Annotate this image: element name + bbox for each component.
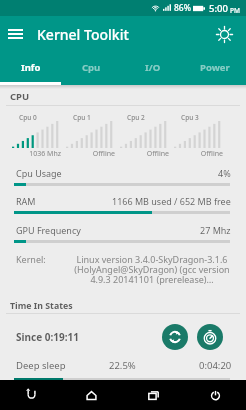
staticText: Cpu Usage <box>16 167 62 179</box>
button[interactable]: Power <box>184 52 246 82</box>
staticText: PM <box>230 6 240 15</box>
staticText: Time In States <box>10 300 73 312</box>
button[interactable]: Power <box>184 380 246 410</box>
staticText: Since 0:19:11 <box>16 330 79 344</box>
staticText: Deep sleep <box>16 359 66 372</box>
button[interactable]: Refresh <box>162 324 188 350</box>
staticText: Kernel Toolkit <box>37 25 129 44</box>
staticText: Cpu 3 <box>181 113 199 122</box>
staticText: Cpu <box>82 61 101 74</box>
staticText: Cpu 2 <box>127 113 145 122</box>
staticText: Linux version 3.4.0-SkyDragon-3.1.6 (Hol… <box>72 253 232 286</box>
staticText: Offline <box>120 149 169 159</box>
staticText: Offline <box>66 149 115 159</box>
staticText: 86% <box>174 2 191 14</box>
staticText: CPU <box>10 90 30 103</box>
staticText: Cpu 1 <box>73 113 91 122</box>
staticText: Info <box>21 61 41 74</box>
button[interactable]: Cpu <box>61 52 122 82</box>
staticText: 0:04:20 <box>199 359 232 372</box>
staticText: 1166 MB used / 652 MB free <box>112 195 231 207</box>
staticText: RAM <box>16 195 36 207</box>
staticText: 1036 Mhz <box>12 149 61 159</box>
button[interactable]: Timer <box>197 324 223 350</box>
button[interactable]: I/O <box>122 52 184 82</box>
staticText: GPU Frequency <box>16 224 81 236</box>
staticText: Kernel: <box>16 253 46 265</box>
staticText: 5:00 <box>209 2 228 15</box>
button[interactable]: Info <box>0 52 61 82</box>
staticText: 22.5% <box>109 359 136 372</box>
button[interactable]: Recents <box>122 380 184 410</box>
button[interactable]: Brightness <box>206 16 242 52</box>
staticText: I/O <box>145 61 161 74</box>
staticText: 4% <box>218 167 231 179</box>
staticText: Offline <box>174 149 223 159</box>
staticText: 27 Mhz <box>200 224 231 236</box>
button[interactable]: Menu <box>0 16 31 52</box>
staticText: Power <box>200 61 230 74</box>
button[interactable]: Home <box>61 380 122 410</box>
staticText: Cpu 0 <box>19 113 37 122</box>
button[interactable]: Back <box>0 380 61 410</box>
